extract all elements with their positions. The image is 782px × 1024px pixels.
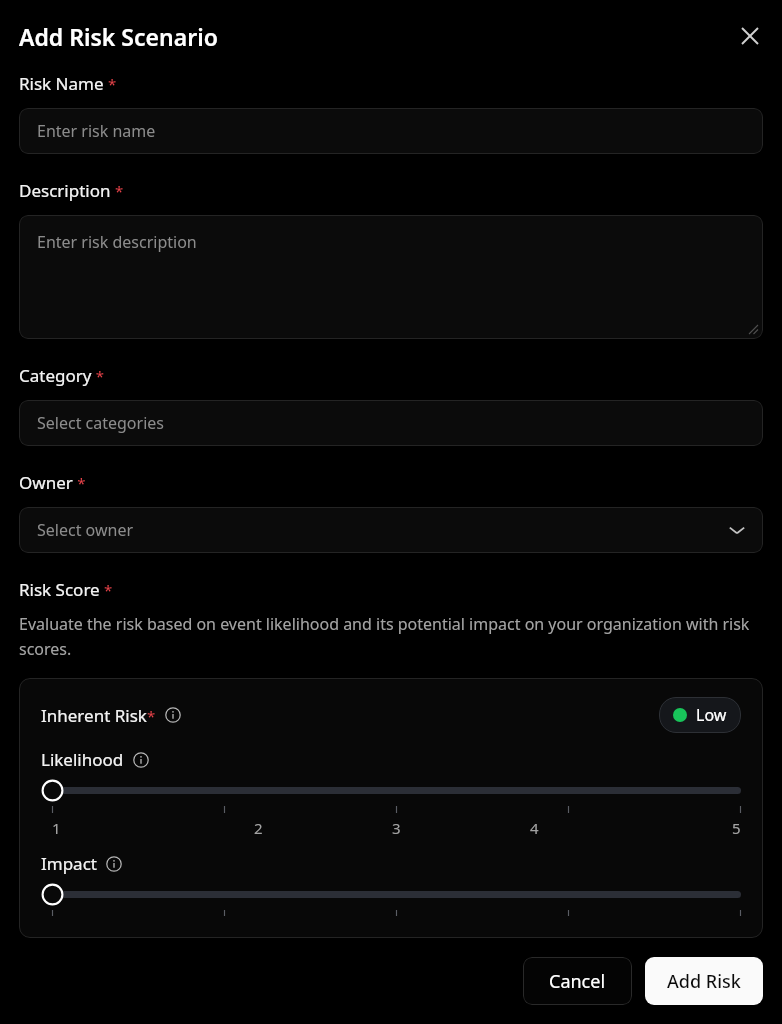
button[interactable]: Enter risk name	[19, 108, 763, 154]
staticText: Description *	[19, 179, 124, 202]
button[interactable]: Select categories	[19, 400, 763, 446]
staticText: 2	[254, 818, 263, 838]
button[interactable]	[41, 779, 64, 802]
staticText: Select categories	[37, 412, 164, 434]
staticText: 3	[392, 818, 401, 838]
staticText: Add Risk	[667, 969, 741, 994]
staticText: Likelihood	[41, 748, 124, 771]
staticText: Risk Name *	[19, 72, 117, 95]
button[interactable]: Select owner	[19, 507, 763, 553]
staticText: Owner *	[19, 471, 86, 494]
staticText: Risk Score *	[19, 578, 113, 601]
button[interactable]	[41, 883, 64, 906]
button[interactable]: Close	[730, 16, 770, 56]
staticText: Select owner	[37, 519, 134, 541]
button[interactable]: Cancel	[523, 957, 632, 1005]
staticText: Enter risk description	[37, 231, 197, 253]
staticText: 1	[52, 818, 61, 838]
staticText: Enter risk name	[37, 120, 156, 142]
button[interactable]: Add Risk	[645, 957, 763, 1005]
staticText: Impact	[41, 852, 97, 875]
staticText: Add Risk Scenario	[19, 21, 218, 52]
staticText: 5	[732, 818, 741, 838]
staticText: Inherent Risk*	[41, 704, 156, 727]
button[interactable]: Low	[659, 697, 741, 733]
staticText: Evaluate the risk based on event likelih…	[19, 613, 763, 659]
staticText: Low	[696, 704, 727, 726]
button[interactable]: Enter risk description	[19, 215, 763, 339]
staticText: Category *	[19, 364, 105, 387]
staticText: 4	[530, 818, 539, 838]
staticText: Cancel	[549, 969, 606, 994]
